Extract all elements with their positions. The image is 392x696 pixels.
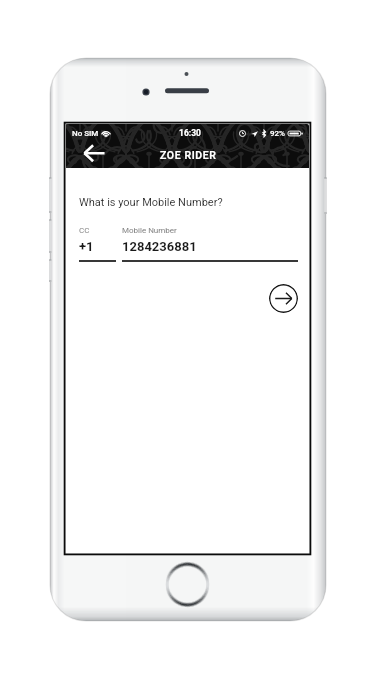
staticText: ZOE RIDER xyxy=(160,149,217,161)
staticText: 1284236881 xyxy=(122,239,197,254)
button[interactable]: Back xyxy=(83,144,105,163)
staticText: Mobile Number xyxy=(122,226,177,235)
staticText: No SIM xyxy=(72,129,99,138)
staticText: +1 xyxy=(79,239,94,254)
button[interactable]: Next xyxy=(269,284,298,313)
staticText: 16:30 xyxy=(179,128,201,138)
staticText: 92% xyxy=(270,129,285,138)
staticText: What is your Mobile Number? xyxy=(79,196,223,209)
staticText: CC xyxy=(79,226,90,235)
